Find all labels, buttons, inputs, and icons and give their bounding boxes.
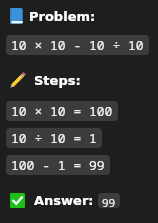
staticText: Problem: [29,9,96,24]
other: Problem [10,8,23,24]
button[interactable]: Problem [10,8,96,24]
button[interactable]: 100 - 1 = 99 [6,155,110,175]
other: Steps [10,73,25,88]
button[interactable]: Steps [10,73,81,88]
staticText: Answer: [34,193,94,208]
staticText: 99 [102,195,116,208]
staticText: 10 × 10 = 100 [11,102,113,120]
staticText: 100 - 1 = 99 [11,156,105,174]
other: Answer [10,193,25,208]
staticText: 10 ÷ 10 = 1 [11,129,97,147]
button[interactable]: 10 × 10 - 10 ÷ 10 [6,35,149,55]
button[interactable]: 10 ÷ 10 = 1 [6,128,102,148]
button[interactable]: 99 [98,193,120,208]
button[interactable]: 10 × 10 = 100 [6,101,118,121]
staticText: Steps: [34,73,81,88]
staticText: 10 × 10 - 10 ÷ 10 [11,36,144,54]
